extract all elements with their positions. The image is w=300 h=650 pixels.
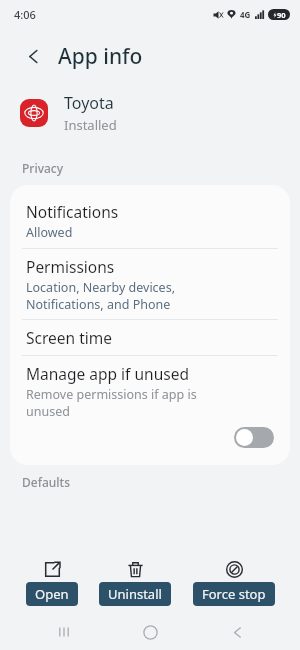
- button[interactable]: Open: [24, 561, 80, 606]
- staticText: Installed: [64, 116, 117, 134]
- staticText: 4G: [240, 9, 251, 20]
- button[interactable]: Toyota: [0, 84, 300, 142]
- button[interactable]: Manage app if unused: [10, 356, 290, 455]
- button[interactable]: Notifications: [10, 194, 290, 248]
- button[interactable]: Recents: [41, 614, 87, 650]
- button[interactable]: Back: [214, 614, 260, 650]
- staticText: 4:06: [14, 7, 36, 22]
- staticText: Location, Nearby devices, Notifications,…: [26, 279, 175, 312]
- staticText: Privacy: [22, 160, 64, 176]
- staticText: Screen time: [26, 327, 112, 348]
- staticText: Notifications: [26, 201, 119, 222]
- button[interactable]: Home: [127, 614, 173, 650]
- other: Force stop: [226, 561, 243, 578]
- staticText: Remove permissions if app is unused: [26, 386, 197, 419]
- other: Open: [44, 561, 61, 578]
- button[interactable]: Screen time: [10, 320, 290, 355]
- button[interactable]: Force stop: [191, 561, 277, 606]
- button[interactable]: Manage app if unused toggle: [234, 427, 274, 448]
- staticText: Open: [35, 585, 69, 603]
- staticText: 90: [277, 10, 286, 20]
- button[interactable]: Uninstall: [97, 561, 173, 606]
- staticText: Force stop: [202, 585, 266, 603]
- staticText: Defaults: [22, 474, 71, 490]
- staticText: Allowed: [26, 224, 73, 241]
- staticText: App info: [58, 42, 143, 71]
- staticText: Uninstall: [108, 585, 162, 603]
- other: Uninstall: [127, 561, 144, 578]
- button[interactable]: Permissions: [10, 249, 290, 319]
- staticText: Permissions: [26, 256, 115, 277]
- staticText: Toyota: [64, 92, 114, 114]
- button[interactable]: Back: [18, 41, 48, 71]
- staticText: Manage app if unused: [26, 363, 189, 384]
